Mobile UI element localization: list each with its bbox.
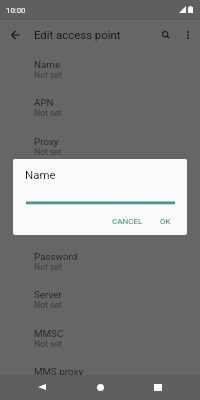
staticText: Password	[34, 251, 78, 262]
staticText: MMSC	[34, 328, 64, 339]
button[interactable]: Username	[0, 211, 200, 249]
button[interactable]: OK	[157, 213, 174, 230]
button[interactable]: Server	[0, 287, 200, 325]
staticText: 10:00	[6, 6, 26, 15]
button[interactable]: Password	[0, 249, 200, 287]
staticText: Name	[34, 59, 61, 70]
staticText: Not set	[34, 70, 62, 80]
button[interactable]: Home	[89, 376, 112, 398]
staticText: CANCEL	[112, 217, 143, 226]
staticText: Name	[25, 168, 56, 181]
staticText: Not set	[34, 108, 62, 118]
button[interactable]: APN	[0, 95, 200, 133]
staticText: OK	[160, 217, 171, 226]
button[interactable]: MMS proxy	[0, 364, 200, 400]
staticText: MMS proxy	[34, 366, 84, 377]
staticText: Not set	[34, 377, 62, 387]
staticText: Not set	[34, 147, 62, 157]
staticText: Not set	[34, 300, 62, 310]
button[interactable]: CANCEL	[109, 213, 146, 230]
staticText: Not set	[34, 339, 62, 349]
staticText: APN	[34, 97, 54, 108]
button[interactable]: Proxy	[0, 134, 200, 172]
button[interactable]: Back	[30, 376, 53, 398]
button[interactable]: MMSC	[0, 326, 200, 364]
button[interactable]: Recent apps	[146, 376, 169, 398]
staticText: Edit access point	[34, 28, 121, 41]
button[interactable]: Navigate up	[5, 25, 25, 45]
button[interactable]: Name	[0, 57, 200, 95]
staticText: Proxy	[34, 136, 59, 147]
button[interactable]: Search	[156, 25, 176, 45]
button[interactable]: Port	[0, 172, 200, 210]
staticText: Port	[34, 174, 53, 185]
staticText: Not set	[34, 262, 62, 272]
button[interactable]: More options	[178, 25, 198, 45]
staticText: Server	[34, 289, 62, 300]
